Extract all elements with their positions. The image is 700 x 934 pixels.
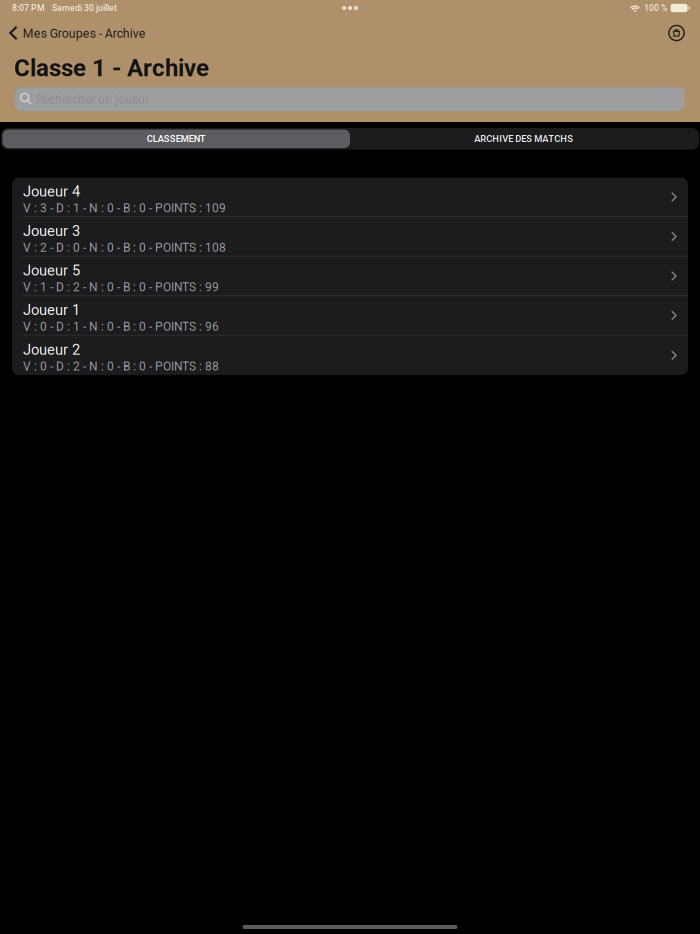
button[interactable]: Archive — [668, 20, 700, 44]
staticText: ARCHIVE DES MATCHS — [474, 133, 573, 144]
button[interactable]: Joueur 2 — [12, 336, 688, 375]
staticText: CLASSEMENT — [147, 133, 206, 144]
button[interactable]: CLASSEMENT — [2, 129, 350, 148]
button[interactable]: Joueur 1 — [12, 296, 688, 336]
staticText: Joueur 4 — [23, 183, 80, 200]
staticText: Classe 1 - Archive — [14, 54, 209, 82]
staticText: Rechercher un joueur — [36, 93, 149, 107]
staticText: V : 1 - D : 2 - N : 0 - B : 0 - POINTS :… — [23, 280, 219, 294]
staticText: 8:07 PM — [12, 3, 45, 13]
button[interactable]: Rechercher un joueur — [15, 87, 685, 111]
staticText: Joueur 2 — [23, 341, 80, 358]
staticText: Joueur 5 — [23, 262, 80, 279]
staticText: Joueur 1 — [23, 301, 80, 318]
button[interactable]: Joueur 4 — [12, 178, 688, 217]
staticText: Samedi 30 juillet — [52, 3, 117, 13]
button[interactable]: Joueur 5 — [12, 257, 688, 296]
staticText: V : 3 - D : 1 - N : 0 - B : 0 - POINTS :… — [23, 201, 226, 215]
button[interactable]: Joueur 3 — [12, 217, 688, 257]
staticText: V : 0 - D : 2 - N : 0 - B : 0 - POINTS :… — [23, 359, 219, 373]
staticText: V : 0 - D : 1 - N : 0 - B : 0 - POINTS :… — [23, 319, 219, 334]
staticText: Mes Groupes - Archive — [23, 26, 146, 41]
button[interactable]: ARCHIVE DES MATCHS — [350, 129, 697, 148]
button[interactable]: Mes Groupes - Archive — [0, 20, 154, 44]
staticText: V : 2 - D : 0 - N : 0 - B : 0 - POINTS :… — [23, 240, 226, 255]
staticText: Joueur 3 — [23, 222, 80, 239]
staticText: 100 % — [644, 3, 667, 13]
